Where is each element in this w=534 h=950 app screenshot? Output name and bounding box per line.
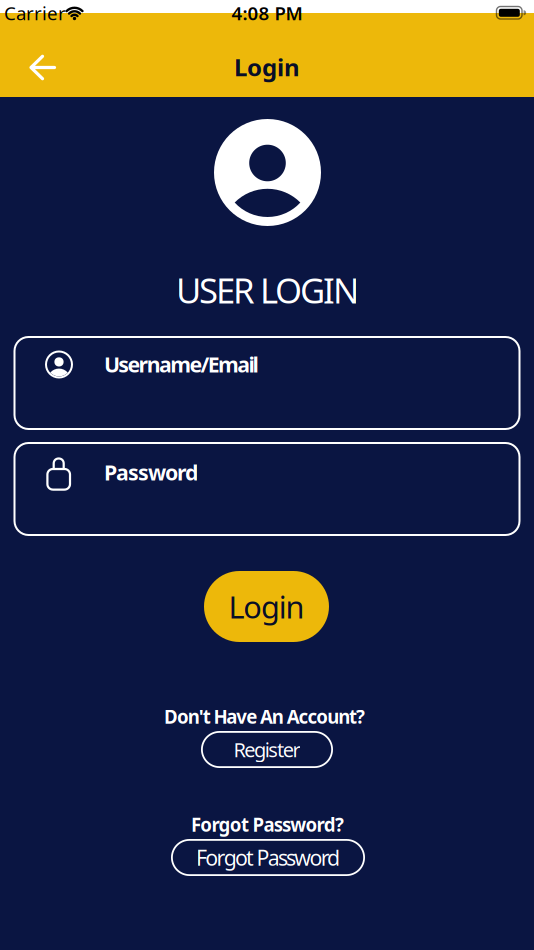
staticText: Don't Have An Account? (164, 704, 365, 729)
staticText: Password (104, 458, 198, 486)
button[interactable]: Login (204, 571, 329, 642)
staticText: Login (228, 586, 305, 627)
button[interactable]: Forgot Password (171, 839, 365, 876)
staticText: Carrier (4, 1, 66, 25)
button[interactable]: Register (201, 731, 333, 768)
staticText: Username/Email (104, 350, 259, 378)
button[interactable]: Username/Email (13, 336, 520, 430)
staticText: Register (233, 736, 300, 763)
button[interactable]: Back (21, 45, 65, 89)
staticText: Login (234, 51, 300, 83)
button[interactable]: Password (13, 442, 520, 536)
staticText: Forgot Password? (191, 812, 344, 837)
staticText: Forgot Password (196, 843, 340, 872)
staticText: USER LOGIN (176, 267, 359, 313)
staticText: 4:08 PM (231, 1, 302, 25)
